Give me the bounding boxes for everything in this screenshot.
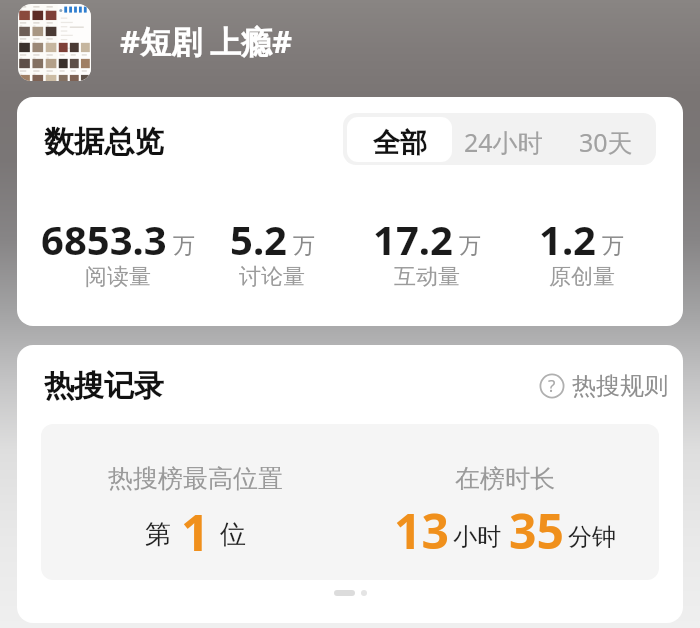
staticText: 阅读量 — [85, 263, 151, 291]
staticText: 第 — [145, 518, 171, 551]
staticText: 全部 — [373, 126, 427, 160]
button[interactable]: 话题封面 — [18, 4, 91, 81]
button[interactable]: 1.2 — [504, 212, 659, 294]
button[interactable]: 6853.3 — [41, 212, 195, 294]
staticText: 热搜规则 — [572, 371, 668, 401]
staticText: 热搜榜最高位置 — [108, 463, 283, 494]
staticText: 数据总览 — [44, 123, 164, 161]
staticText: 讨论量 — [239, 263, 305, 291]
other: 热搜规则说明 — [539, 373, 565, 399]
staticText: 5.2 — [230, 212, 287, 266]
staticText: 分钟 — [568, 522, 616, 552]
staticText: 35 — [509, 498, 564, 563]
staticText: 互动量 — [394, 263, 460, 291]
staticText: 万 — [459, 232, 481, 260]
staticText: 万 — [602, 232, 624, 260]
staticText: 30天 — [579, 125, 633, 159]
staticText: 原创量 — [549, 263, 615, 291]
other: 页面指示器 — [17, 590, 683, 596]
staticText: 小时 — [453, 522, 501, 552]
staticText: 位 — [220, 518, 246, 551]
staticText: 24小时 — [464, 125, 543, 159]
staticText: 1.2 — [539, 212, 596, 266]
staticText: 1 — [181, 498, 210, 566]
staticText: ? — [548, 374, 556, 397]
staticText: #短剧 上瘾# — [120, 20, 293, 62]
staticText: 在榜时长 — [455, 463, 555, 494]
staticText: 13 — [394, 498, 449, 563]
staticText: 6853.3 — [41, 212, 167, 266]
staticText: 万 — [173, 232, 195, 260]
staticText: 17.2 — [373, 212, 453, 266]
button[interactable]: 17.2 — [349, 212, 504, 294]
staticText: 万 — [293, 232, 315, 260]
button[interactable]: 热搜规则说明 — [539, 371, 668, 401]
button[interactable]: 24小时 — [452, 113, 555, 165]
button[interactable]: 全部 — [347, 117, 452, 162]
button[interactable]: 30天 — [555, 113, 656, 165]
staticText: 热搜记录 — [44, 367, 164, 405]
button[interactable]: 热搜榜最高位置 — [41, 424, 350, 580]
button[interactable]: 在榜时长 — [350, 424, 659, 580]
button[interactable]: 5.2 — [195, 212, 349, 294]
